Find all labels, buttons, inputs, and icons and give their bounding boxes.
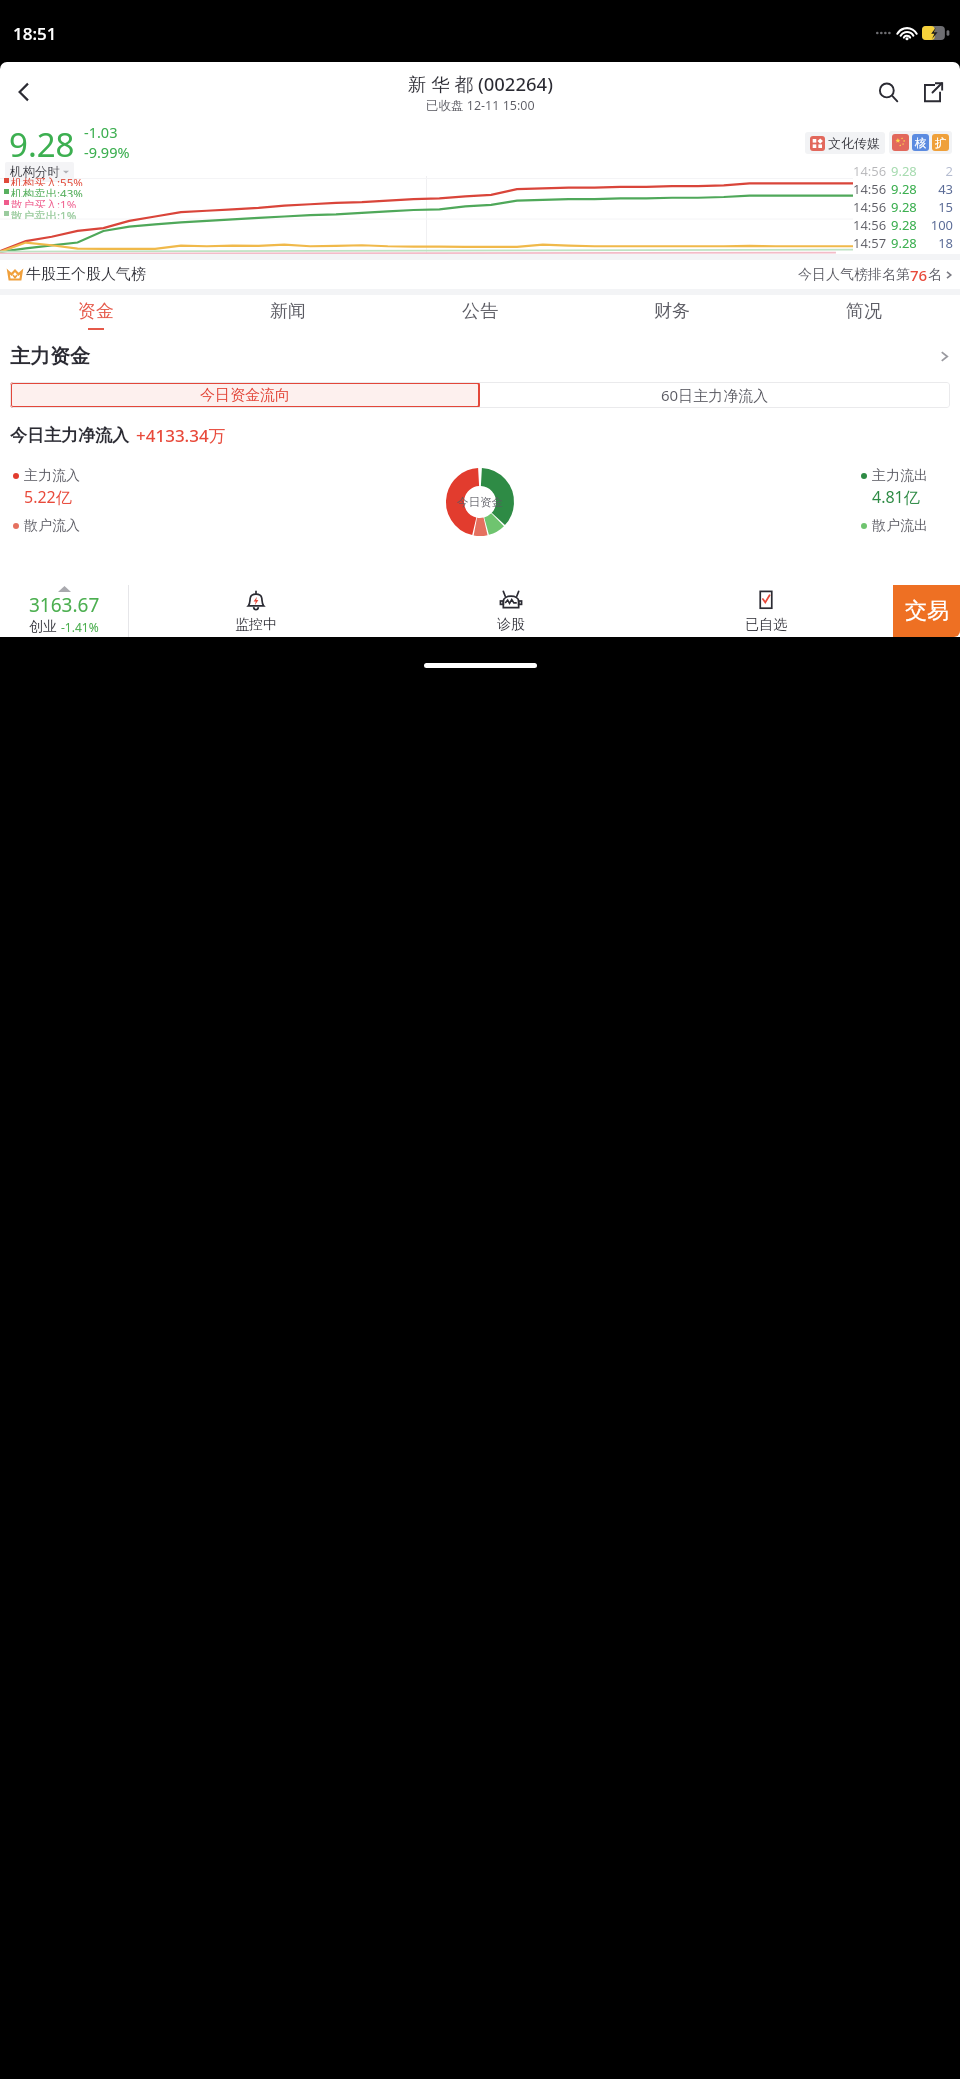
button[interactable]: 财务 [576,295,768,332]
staticText: 名 [928,266,942,284]
staticText: 18 [927,234,953,252]
staticText: 9.28 [891,198,927,216]
staticText: +4133.34万 [136,424,226,447]
staticText: 14:56 [853,216,891,234]
button[interactable]: 简况 [768,295,960,332]
staticText: 监控中 [235,616,277,634]
button[interactable]: 已自选 [638,585,893,637]
staticText: 已收盘 12-11 15:00 [426,97,535,114]
staticText: 100 [927,216,953,234]
staticText: 15 [927,198,953,216]
button[interactable]: 资金 [0,295,192,332]
staticText: 散户买入:1% [11,197,77,208]
staticText: 散户流入 [24,517,80,535]
staticText: 60日主力净流入 [661,385,769,405]
staticText: 散户流出 [872,517,928,535]
button[interactable]: 新闻 [192,295,384,332]
button[interactable]: Back [0,68,48,116]
staticText: 今日主力净流入 [10,425,129,446]
button[interactable]: 3163.67 [0,585,128,637]
staticText: 今日人气榜排名第 [798,266,910,284]
staticText: 今日资金 [457,495,503,509]
staticText: 公告 [462,300,498,323]
button[interactable]: Search [866,70,910,114]
staticText: 14:57 [853,234,891,252]
staticText: -1.03 [84,122,118,142]
staticText: 主力资金 [10,344,90,369]
button[interactable]: 机构分时 [5,162,74,182]
staticText: 9.28 [891,162,927,180]
staticText: 机构买入:55% [11,175,83,186]
staticText: 9.28 [9,122,75,162]
staticText: 今日资金流向 [200,386,290,405]
staticText: 机构卖出:43% [11,186,83,197]
button[interactable]: 诊股 [383,585,638,637]
staticText: 诊股 [497,616,525,634]
staticText: -1.41% [61,619,99,635]
staticText: 14:56 [853,162,891,180]
staticText: 创业 [29,618,57,636]
staticText: 4.81亿 [872,486,920,508]
staticText: 3163.67 [29,592,100,618]
button[interactable]: 公告 [384,295,576,332]
staticText: 43 [927,180,953,198]
staticText: 新闻 [270,300,306,323]
staticText: 牛股王个股人气榜 [26,265,146,284]
staticText: 简况 [846,300,882,323]
staticText: 新 华 都 (002264) [408,71,553,96]
staticText: 14:56 [853,198,891,216]
staticText: 核 [915,136,927,150]
staticText: 财务 [654,300,690,323]
staticText: 14:56 [853,180,891,198]
button[interactable]: 交易 [893,585,960,637]
staticText: 9.28 [891,234,927,252]
staticText: 76 [910,265,928,285]
staticText: -9.99% [84,142,130,162]
button[interactable]: 牛股王个股人气榜 [0,260,960,289]
staticText: 扩 [935,136,947,150]
staticText: 9.28 [891,180,927,198]
button[interactable]: 主力资金 [0,341,960,372]
button[interactable]: 今日资金流向 [10,382,480,408]
staticText: 18:51 [13,22,57,45]
button[interactable]: Share [910,70,954,114]
staticText: 2 [927,162,953,180]
button[interactable]: 核 [889,131,952,154]
button[interactable]: 60日主力净流入 [480,382,950,408]
staticText: 主力流出 [872,467,928,485]
staticText: 主力流入 [24,467,80,485]
button[interactable]: 文化传媒 [805,132,885,154]
staticText: 文化传媒 [828,135,880,151]
staticText: 已自选 [745,616,787,634]
staticText: 5.22亿 [24,486,72,508]
button[interactable]: 监控中 [129,585,383,637]
staticText: 资金 [78,300,114,323]
staticText: 9.28 [891,216,927,234]
staticText: 交易 [905,597,949,625]
staticText: 机构分时 [10,164,60,180]
staticText: 散户卖出:1% [11,208,77,219]
